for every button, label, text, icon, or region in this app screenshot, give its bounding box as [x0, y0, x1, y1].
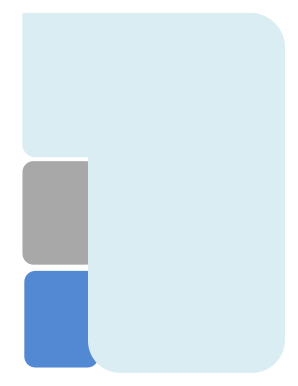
button[interactable]: Accent card — [0, 0, 298, 386]
button[interactable]: Media card — [0, 0, 298, 386]
